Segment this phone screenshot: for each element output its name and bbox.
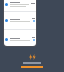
button[interactable] bbox=[4, 0, 36, 10]
button[interactable] bbox=[4, 33, 36, 45]
other: No messages bbox=[29, 54, 36, 60]
button[interactable] bbox=[4, 14, 36, 26]
